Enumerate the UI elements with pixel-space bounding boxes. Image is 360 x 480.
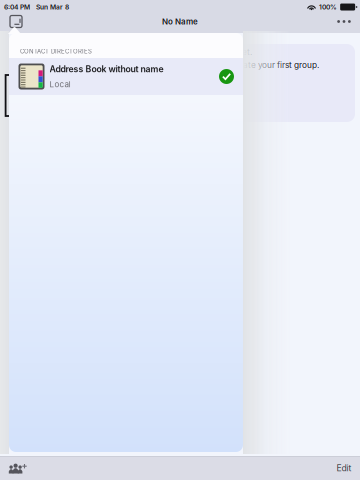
button[interactable]: Contact directories [3,13,29,30]
staticText: Sun Mar 8 [36,3,69,11]
button[interactable]: More [331,13,357,30]
staticText: No Name [162,17,198,26]
staticText: Address Book without name [49,64,163,74]
staticText: Edit [336,463,351,473]
staticText: 100% [319,3,337,11]
staticText: CONTACT DIRECTORIES [20,48,92,55]
button[interactable]: Add group [3,456,33,480]
button[interactable]: Edit [329,456,359,480]
staticText: Local [49,79,70,89]
staticText: 6:04 PM [4,3,30,11]
staticText: Tap + to create your first group. [196,60,319,70]
button[interactable]: Address Book without name [9,58,243,95]
staticText: No groups yet. [196,47,252,57]
